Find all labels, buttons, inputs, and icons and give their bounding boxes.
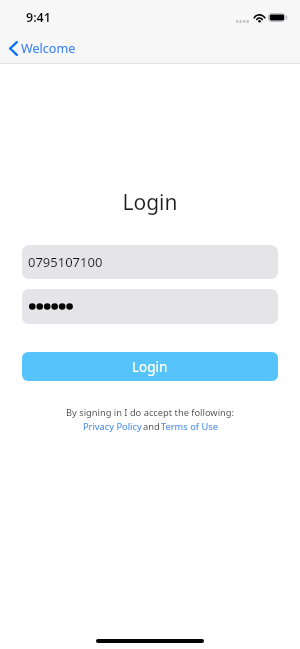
staticText: Login <box>0 188 300 217</box>
staticText: By signing in I do accept the following: <box>0 406 300 419</box>
button[interactable] <box>22 289 278 324</box>
button[interactable]: 0795107100 <box>22 245 278 279</box>
staticText: Welcome <box>21 40 76 57</box>
staticText: and <box>143 420 160 433</box>
button[interactable]: Back <box>6 39 82 58</box>
button[interactable]: Login <box>22 352 278 381</box>
other: Back <box>9 41 18 56</box>
staticText: Login <box>132 358 168 376</box>
staticText: 9:41 <box>26 9 51 26</box>
button[interactable]: Privacy Policy <box>83 420 142 433</box>
staticText: 0795107100 <box>28 253 103 271</box>
button[interactable]: Terms of Use <box>161 420 218 433</box>
